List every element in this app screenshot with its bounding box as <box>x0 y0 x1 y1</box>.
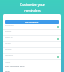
staticText: Snooze <box>5 48 12 51</box>
staticText: Vibration <box>5 54 14 57</box>
button[interactable]: Snooze <box>3 48 61 54</box>
staticText: Notes <box>5 61 11 64</box>
button[interactable]: Starts at <box>3 36 61 42</box>
button[interactable]: Reminder <box>3 24 61 30</box>
staticText: Repeat <box>5 30 12 33</box>
button[interactable]: Repeat <box>3 30 61 36</box>
button[interactable]: Sound <box>3 42 61 48</box>
staticText: reminders <box>24 8 41 13</box>
staticText: Stay hydrated daily <box>5 65 25 68</box>
staticText: Goal <box>5 70 10 72</box>
staticText: Sound <box>5 42 11 45</box>
staticText: Starts at <box>5 36 13 39</box>
staticText: Customize your <box>20 2 45 7</box>
staticText: Reminder <box>5 24 14 27</box>
button[interactable]: Vibration <box>3 54 61 60</box>
button[interactable]: Set reminder <box>5 20 59 24</box>
staticText: Set reminder <box>25 21 39 24</box>
